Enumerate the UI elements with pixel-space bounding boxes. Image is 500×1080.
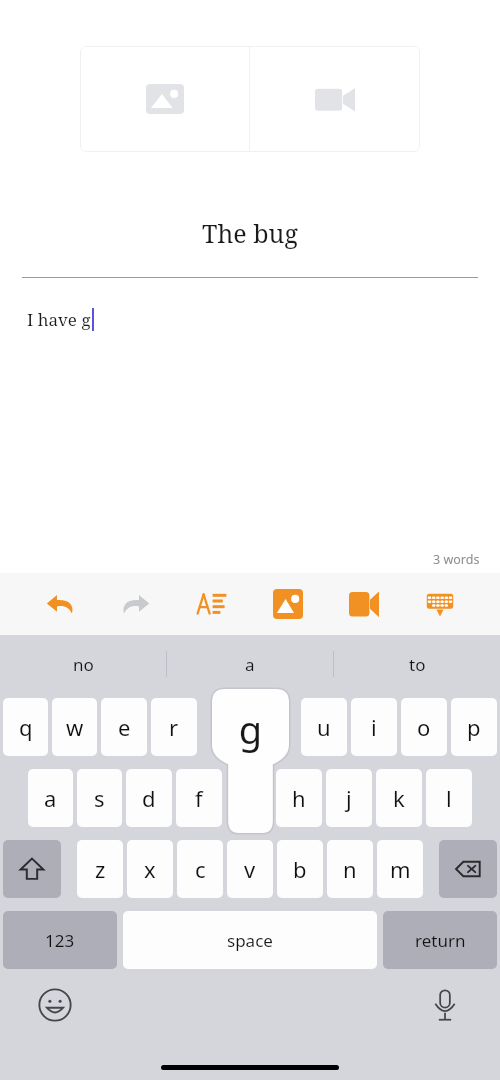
button[interactable]: l xyxy=(426,769,472,827)
staticText: d xyxy=(142,783,156,813)
staticText: to xyxy=(409,653,426,676)
button[interactable]: k xyxy=(376,769,422,827)
button[interactable]: n xyxy=(327,840,373,898)
staticText: I have g xyxy=(27,308,91,331)
staticText: no xyxy=(73,653,94,676)
staticText: a xyxy=(245,653,255,676)
staticText: g xyxy=(212,703,289,755)
staticText: k xyxy=(393,783,405,813)
staticText: x xyxy=(144,854,156,884)
button[interactable]: Undo xyxy=(22,573,98,635)
button[interactable]: j xyxy=(326,769,372,827)
staticText: q xyxy=(19,712,33,742)
staticText: m xyxy=(390,854,411,884)
staticText: return xyxy=(415,929,466,952)
staticText: p xyxy=(467,712,481,742)
staticText: s xyxy=(94,783,105,813)
staticText: c xyxy=(195,854,206,884)
button[interactable]: i xyxy=(351,698,397,756)
button[interactable]: Insert photo xyxy=(80,46,249,152)
staticText: j xyxy=(346,783,352,813)
button[interactable]: q xyxy=(3,698,48,756)
button[interactable] xyxy=(226,769,272,827)
button[interactable]: Insert video xyxy=(250,46,420,152)
button[interactable]: 123 xyxy=(3,911,117,969)
staticText: The bug xyxy=(0,216,500,250)
other: Insert video xyxy=(315,86,355,113)
button[interactable]: w xyxy=(52,698,97,756)
staticText: 123 xyxy=(45,929,75,952)
button[interactable]: d xyxy=(126,769,172,827)
staticText: i xyxy=(371,712,377,742)
other: Insert photo xyxy=(146,84,184,114)
button[interactable]: b xyxy=(277,840,323,898)
button[interactable]: e xyxy=(101,698,147,756)
button[interactable]: z xyxy=(77,840,123,898)
button[interactable]: u xyxy=(301,698,347,756)
button[interactable]: Insert video xyxy=(326,573,402,635)
staticText: e xyxy=(118,712,131,742)
button[interactable]: Hide keyboard xyxy=(402,573,478,635)
staticText: v xyxy=(244,854,256,884)
button[interactable]: h xyxy=(276,769,322,827)
button[interactable]: Dictation xyxy=(422,982,468,1028)
button[interactable]: to xyxy=(334,635,500,693)
button[interactable]: s xyxy=(77,769,122,827)
button[interactable]: Emoji xyxy=(32,982,78,1028)
staticText: z xyxy=(95,854,106,884)
button[interactable]: r xyxy=(151,698,197,756)
button[interactable]: f xyxy=(176,769,222,827)
button[interactable]: a xyxy=(28,769,73,827)
staticText: h xyxy=(292,783,306,813)
button[interactable]: o xyxy=(401,698,447,756)
staticText: b xyxy=(293,854,307,884)
button[interactable]: m xyxy=(377,840,423,898)
staticText: n xyxy=(343,854,357,884)
button[interactable]: a xyxy=(167,635,333,693)
staticText: u xyxy=(317,712,331,742)
button[interactable] xyxy=(201,698,247,756)
button[interactable]: Shift xyxy=(3,840,61,898)
button[interactable]: no xyxy=(0,635,166,693)
button[interactable]: Backspace xyxy=(439,840,497,898)
staticText: w xyxy=(66,712,84,742)
staticText: o xyxy=(417,712,431,742)
button[interactable]: c xyxy=(177,840,223,898)
button[interactable] xyxy=(251,698,297,756)
staticText: r xyxy=(169,712,179,742)
button[interactable]: Redo xyxy=(98,573,174,635)
staticText: space xyxy=(227,929,273,952)
button[interactable]: p xyxy=(451,698,497,756)
button[interactable]: Formatting xyxy=(174,573,250,635)
button[interactable]: Insert photo xyxy=(250,573,326,635)
staticText: a xyxy=(44,783,57,813)
staticText: 3 words xyxy=(433,551,480,568)
button[interactable]: return xyxy=(383,911,497,969)
button[interactable]: x xyxy=(127,840,173,898)
button[interactable]: space xyxy=(123,911,377,969)
staticText: f xyxy=(195,783,203,813)
button[interactable]: v xyxy=(227,840,273,898)
staticText: l xyxy=(446,783,452,813)
